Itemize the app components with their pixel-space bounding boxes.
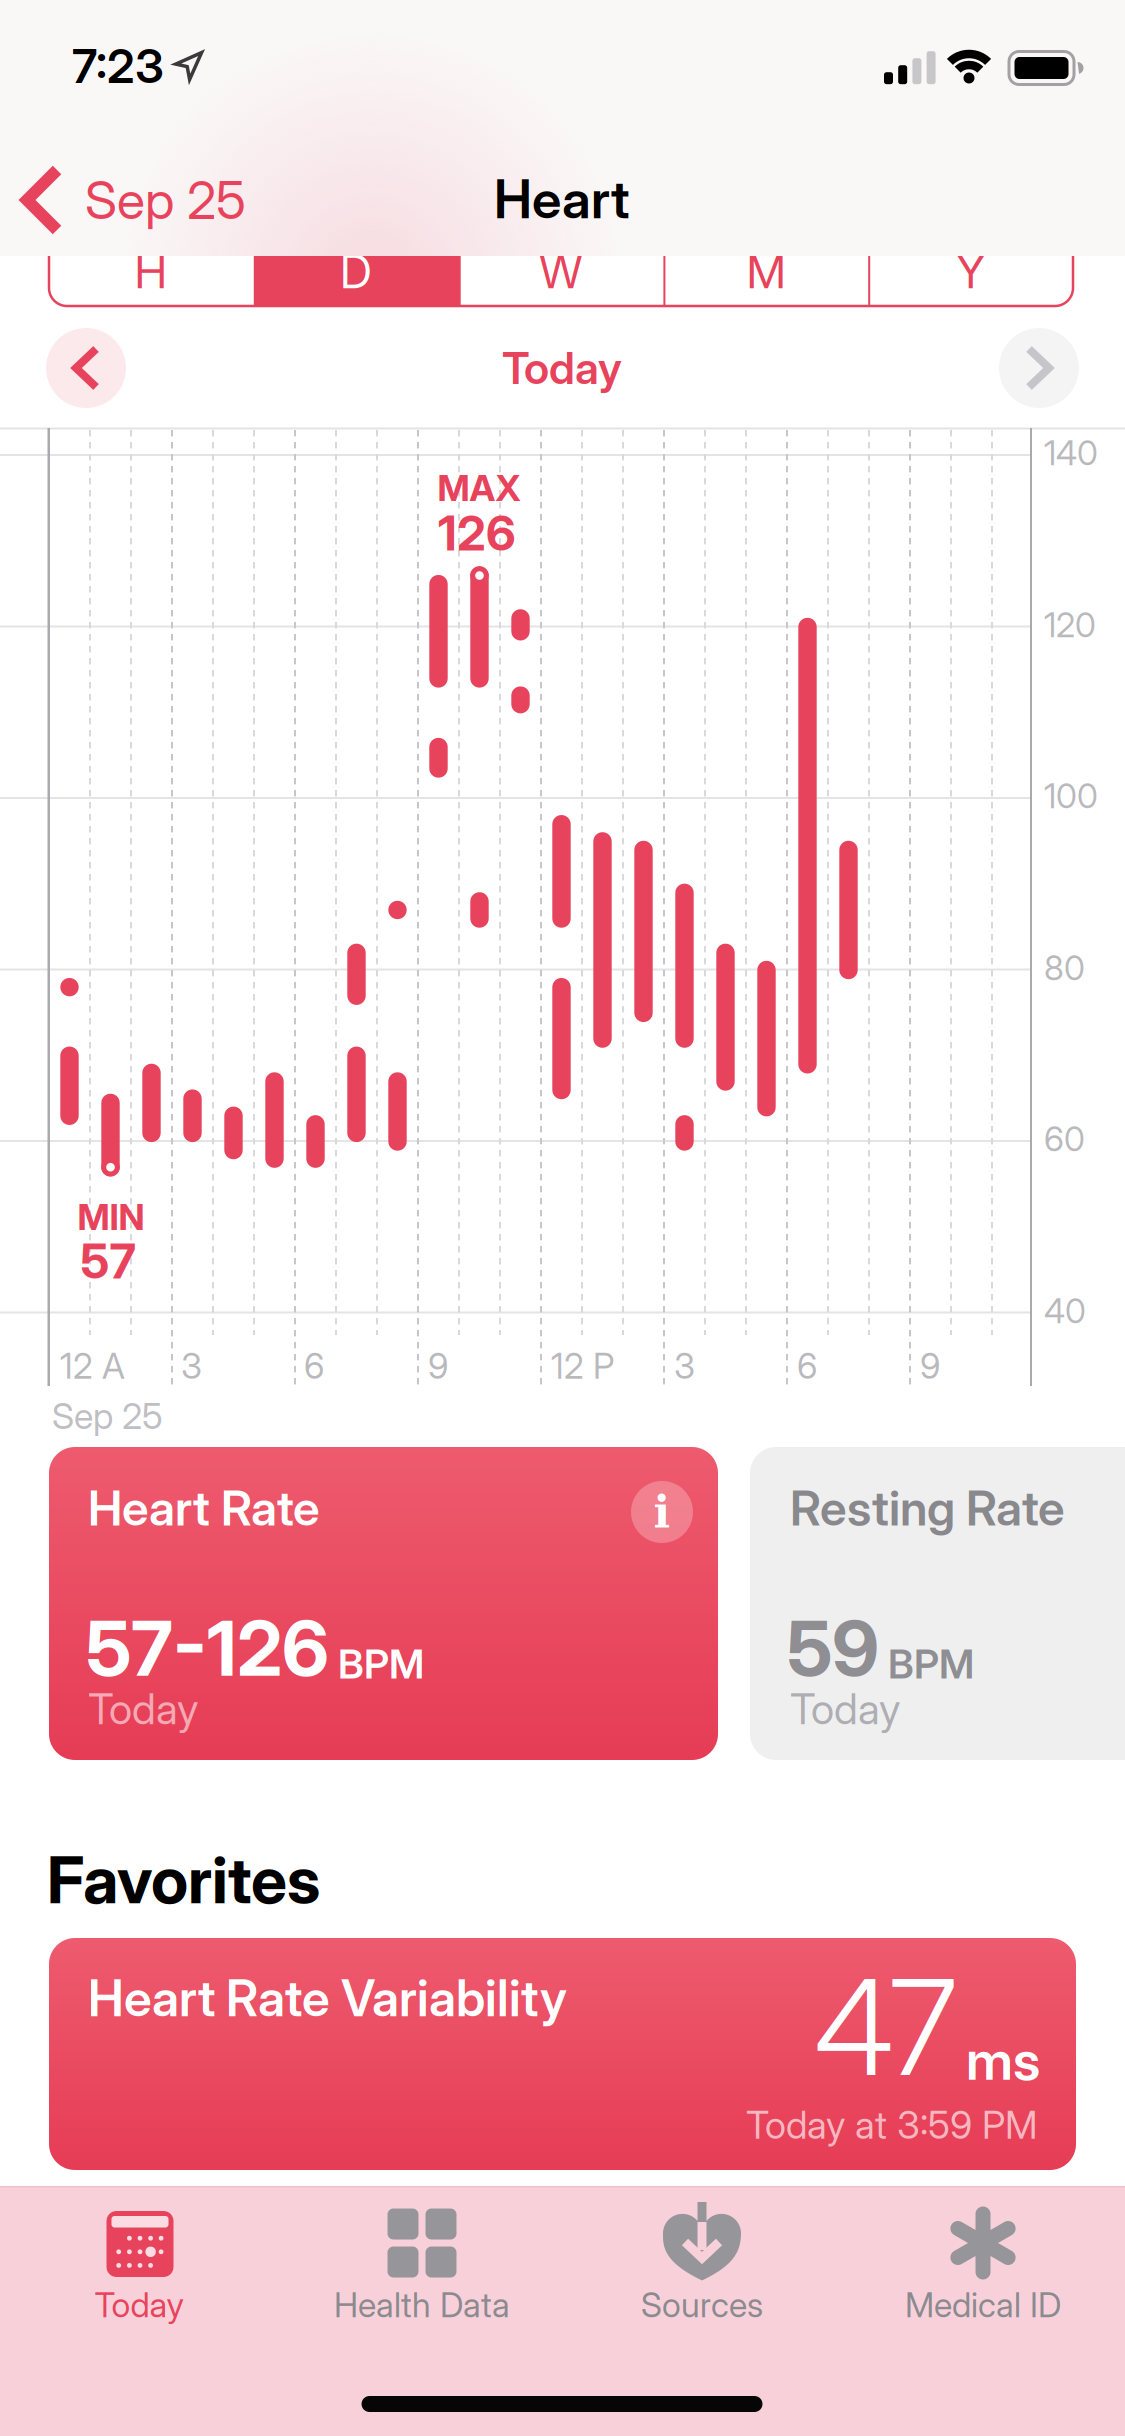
button[interactable]: Resting Rate bbox=[750, 1447, 1125, 1760]
button[interactable]: D bbox=[256, 218, 456, 305]
staticText: Sep 25 bbox=[52, 1395, 163, 1437]
staticText: Today bbox=[88, 1684, 198, 1734]
staticText: 126 bbox=[438, 505, 516, 561]
staticText: 100 bbox=[1044, 776, 1098, 816]
staticText: Favorites bbox=[47, 1842, 320, 1918]
staticText: BPM bbox=[338, 1640, 424, 1688]
staticText: Today bbox=[502, 342, 622, 394]
button[interactable]: Heart Rate bbox=[49, 1447, 718, 1760]
staticText: 3 bbox=[674, 1345, 695, 1387]
staticText: Today bbox=[94, 2285, 183, 2325]
button[interactable]: Previous day bbox=[46, 328, 126, 408]
button[interactable]: M bbox=[666, 218, 866, 305]
staticText: 57-126 bbox=[86, 1603, 329, 1693]
button[interactable]: Sources bbox=[597, 2187, 807, 2337]
staticText: Heart Rate Variability bbox=[88, 1968, 567, 2027]
staticText: Health Data bbox=[334, 2285, 510, 2325]
staticText: 3 bbox=[181, 1345, 202, 1387]
staticText: Heart bbox=[494, 168, 630, 230]
button[interactable]: Next day bbox=[999, 328, 1079, 408]
staticText: 40 bbox=[1044, 1291, 1086, 1331]
staticText: 120 bbox=[1044, 605, 1096, 645]
staticText: M bbox=[746, 244, 785, 299]
staticText: i bbox=[653, 1486, 670, 1538]
staticText: MAX bbox=[437, 467, 520, 509]
staticText: 57 bbox=[80, 1233, 135, 1289]
staticText: Resting Rate bbox=[790, 1480, 1065, 1536]
staticText: Sep 25 bbox=[85, 169, 246, 231]
staticText: 47 bbox=[814, 1949, 957, 2105]
staticText: 9 bbox=[428, 1345, 448, 1387]
button[interactable]: Today bbox=[34, 2187, 244, 2337]
staticText: Sources bbox=[641, 2285, 763, 2325]
staticText: 80 bbox=[1044, 948, 1085, 988]
staticText: Today bbox=[790, 1684, 900, 1734]
staticText: MIN bbox=[77, 1196, 144, 1238]
staticText: BPM bbox=[888, 1640, 974, 1688]
staticText: ms bbox=[966, 2028, 1040, 2092]
button[interactable]: About Heart Rate bbox=[631, 1481, 693, 1543]
staticText: Today at 3:59 PM bbox=[746, 2103, 1038, 2147]
staticText: 9 bbox=[920, 1345, 940, 1387]
staticText: 7:23 bbox=[72, 38, 164, 94]
staticText: 12 P bbox=[551, 1345, 614, 1387]
button[interactable]: Medical ID bbox=[878, 2187, 1088, 2337]
staticText: 12 A bbox=[60, 1345, 125, 1387]
staticText: Medical ID bbox=[905, 2285, 1061, 2325]
staticText: D bbox=[340, 244, 372, 299]
staticText: W bbox=[539, 244, 583, 299]
staticText: 59 bbox=[787, 1603, 879, 1693]
button[interactable]: Back bbox=[10, 166, 340, 234]
button[interactable]: W bbox=[461, 218, 661, 305]
button[interactable]: H bbox=[51, 218, 251, 305]
button[interactable]: Heart Rate Variability bbox=[49, 1938, 1076, 2170]
staticText: Y bbox=[956, 244, 986, 299]
staticText: H bbox=[134, 244, 167, 299]
staticText: 6 bbox=[304, 1345, 324, 1387]
staticText: 6 bbox=[797, 1345, 817, 1387]
button[interactable]: Y bbox=[871, 218, 1071, 305]
staticText: Heart Rate bbox=[88, 1480, 320, 1536]
staticText: 140 bbox=[1044, 433, 1098, 473]
button[interactable]: Health Data bbox=[317, 2187, 527, 2337]
staticText: 60 bbox=[1044, 1119, 1085, 1159]
